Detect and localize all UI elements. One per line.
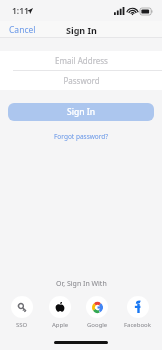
button[interactable]: Password <box>0 71 162 90</box>
staticText: Google <box>87 321 108 329</box>
button[interactable]: Sign in with Google <box>86 296 108 329</box>
button[interactable]: Email Address <box>0 51 162 70</box>
staticText: SSO <box>16 321 28 329</box>
staticText: Or, Sign In With <box>56 279 107 289</box>
staticText: Facebook <box>124 321 151 329</box>
staticText: Sign In <box>66 24 97 36</box>
staticText: Password <box>63 75 100 86</box>
button[interactable]: Forgot password? <box>48 130 115 143</box>
staticText: Email Address <box>55 55 108 66</box>
button[interactable]: Sign in with Apple <box>49 296 71 329</box>
button[interactable]: Sign In <box>8 103 154 121</box>
staticText: 1:11 <box>12 5 29 17</box>
button[interactable]: Sign in with Facebook <box>124 296 151 329</box>
staticText: Forgot password? <box>54 132 109 141</box>
staticText: Apple <box>52 321 69 329</box>
button[interactable]: Sign in with SSO <box>11 296 33 329</box>
button[interactable]: Cancel <box>0 22 45 38</box>
staticText: Cancel <box>9 24 36 36</box>
staticText: Sign In <box>67 106 96 118</box>
